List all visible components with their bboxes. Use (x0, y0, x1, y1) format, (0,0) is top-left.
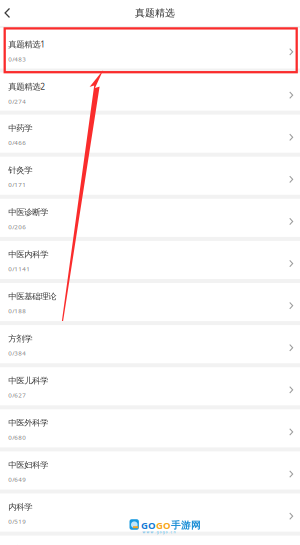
staticText: 中医妇科学 (8, 460, 48, 470)
staticText: 真题精选 (135, 7, 175, 19)
button[interactable]: 中医内科学 (0, 241, 300, 279)
staticText: 0/483 (8, 55, 26, 63)
staticText: 0/274 (8, 97, 26, 105)
staticText: 真题精选1 (8, 38, 45, 50)
staticText: 中药学 (8, 123, 32, 133)
button[interactable]: 方剂学 (0, 325, 300, 363)
button[interactable]: 针灸学 (0, 157, 300, 195)
staticText: 中医诊断学 (8, 207, 48, 218)
button[interactable]: 中医外科学 (0, 409, 300, 447)
staticText: 中医外科学 (8, 417, 48, 428)
staticText: 0/384 (8, 349, 26, 357)
staticText: 手游网 (171, 519, 201, 531)
staticText: 0/188 (8, 307, 26, 315)
button[interactable]: 真题精选2 (0, 72, 300, 111)
staticText: 中医儿科学 (8, 375, 48, 386)
button[interactable]: 中医诊断学 (0, 199, 300, 237)
button[interactable]: 中药学 (0, 115, 300, 153)
button[interactable]: 真题精选1 (0, 28, 300, 68)
button[interactable]: Back (0, 1, 17, 25)
staticText: 0/466 (8, 138, 26, 147)
staticText: 0/1141 (8, 265, 30, 273)
staticText: 0/206 (8, 223, 26, 231)
button[interactable]: 中医儿科学 (0, 367, 300, 405)
staticText: 中医内科学 (8, 249, 48, 260)
staticText: 0/171 (8, 180, 26, 189)
staticText: 内科学 (8, 502, 32, 512)
staticText: GO (156, 519, 171, 532)
staticText: 方剂学 (8, 333, 32, 344)
staticText: 真题精选2 (8, 81, 45, 92)
button[interactable]: 内科学 (0, 493, 300, 532)
staticText: 0/649 (8, 475, 26, 484)
staticText: w w w . g o g o . c n (142, 530, 175, 534)
staticText: 中医基础理论 (8, 291, 56, 302)
staticText: 0/680 (8, 433, 26, 441)
staticText: 针灸学 (8, 165, 32, 175)
staticText: 0/627 (8, 391, 26, 399)
staticText: 0/519 (8, 517, 26, 526)
staticText: GO (141, 519, 156, 532)
button[interactable]: 中医妇科学 (0, 451, 300, 489)
button[interactable]: 中医基础理论 (0, 283, 300, 321)
